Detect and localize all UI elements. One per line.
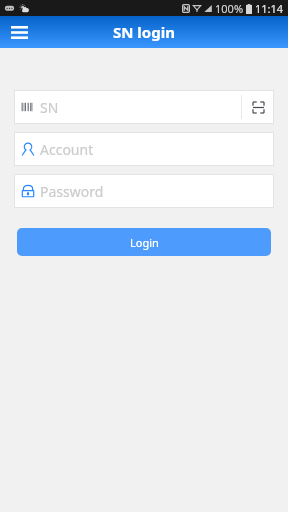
staticText: SN: [40, 98, 59, 117]
button[interactable]: SN: [14, 90, 274, 124]
staticText: 11:14: [255, 1, 284, 16]
staticText: 100%: [215, 1, 244, 16]
staticText: SN login: [113, 22, 175, 42]
button[interactable]: Menu: [6, 19, 32, 45]
button[interactable]: Login: [17, 228, 271, 256]
button[interactable]: Password: [14, 174, 274, 208]
staticText: Account: [40, 140, 94, 159]
button[interactable]: Account: [14, 132, 274, 166]
staticText: Login: [130, 235, 159, 250]
staticText: Password: [40, 182, 104, 201]
button[interactable]: Scan barcode: [242, 90, 274, 124]
